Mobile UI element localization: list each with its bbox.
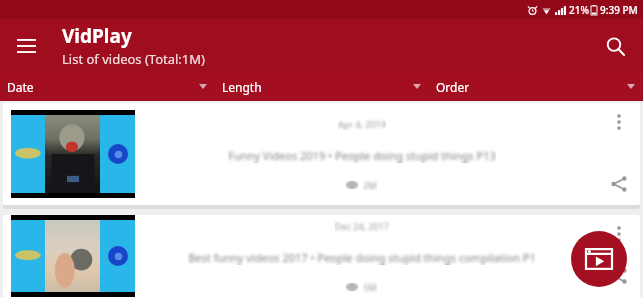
button[interactable]: Share bbox=[602, 167, 636, 201]
button[interactable]: New video bbox=[571, 231, 627, 287]
button[interactable]: Length bbox=[215, 72, 429, 101]
staticText: 21% bbox=[569, 3, 589, 17]
staticText: Funny Videos 2019 • People doing stupid … bbox=[228, 148, 496, 163]
button[interactable]: More options bbox=[602, 105, 636, 139]
staticText: VidPlay bbox=[62, 23, 132, 49]
staticText: List of videos (Total:1M) bbox=[62, 50, 205, 68]
staticText: 2M bbox=[363, 179, 377, 191]
button[interactable]: Search bbox=[593, 24, 637, 68]
button[interactable]: Order bbox=[429, 72, 643, 101]
staticText: Apr 4, 2019 bbox=[338, 118, 386, 130]
staticText: Date bbox=[7, 79, 34, 95]
button[interactable]: More options bbox=[602, 217, 636, 251]
staticText: 9:39 PM bbox=[600, 3, 638, 17]
staticText: Length bbox=[222, 79, 262, 95]
button[interactable]: Apr 4, 2019 bbox=[3, 103, 640, 205]
button[interactable]: Open navigation drawer bbox=[4, 24, 48, 68]
button[interactable]: Date bbox=[0, 72, 215, 101]
button[interactable]: Share bbox=[602, 259, 636, 293]
staticText: Order bbox=[436, 79, 470, 95]
staticText: 5M bbox=[363, 281, 377, 293]
staticText: Best funny videos 2017 • People doing st… bbox=[188, 250, 536, 265]
button[interactable]: Dec 24, 2017 bbox=[3, 215, 640, 297]
staticText: Dec 24, 2017 bbox=[335, 220, 389, 232]
